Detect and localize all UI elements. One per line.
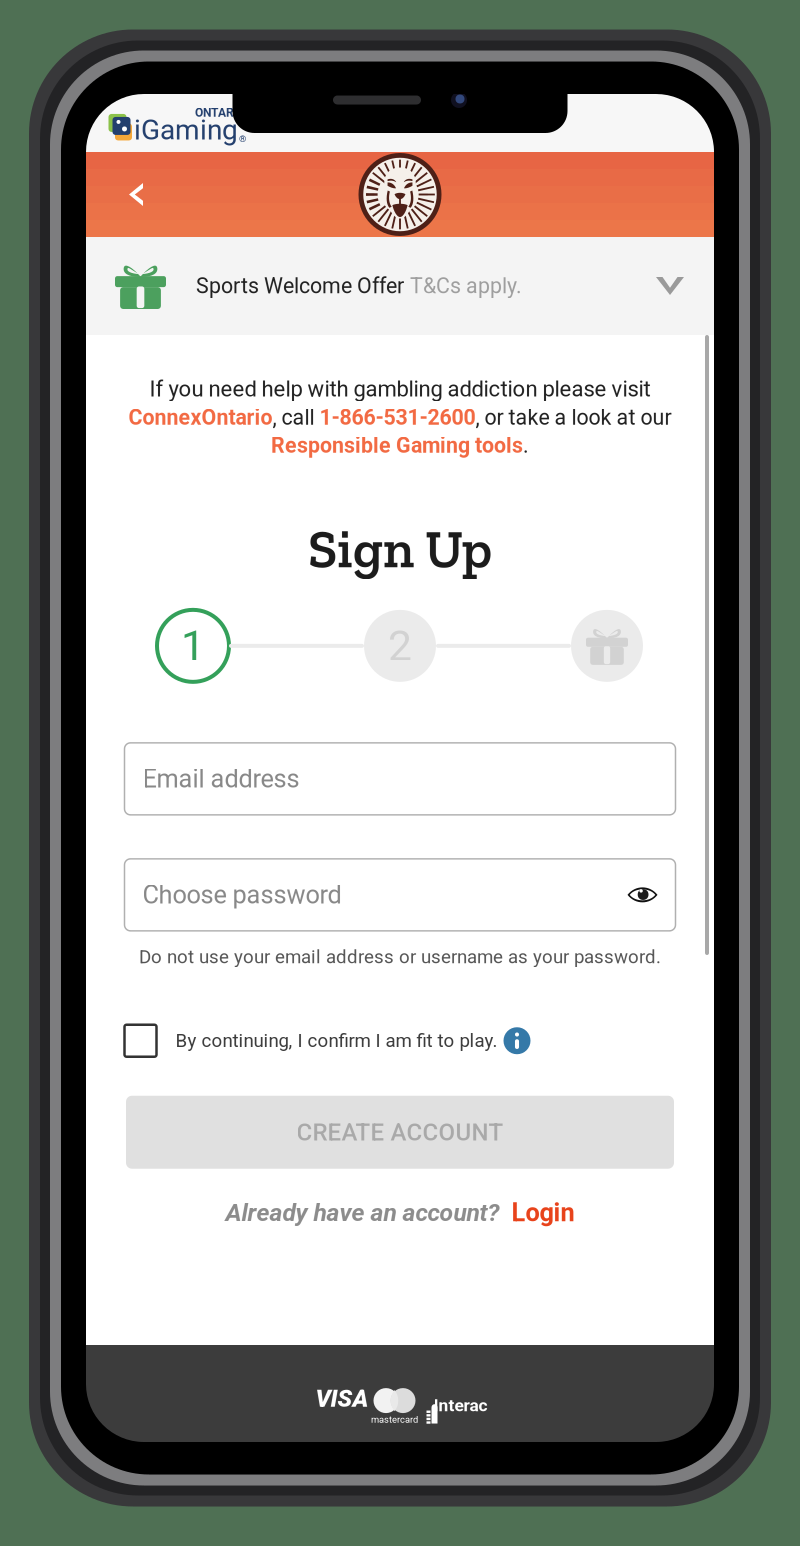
staticText: . — [523, 433, 529, 458]
button[interactable]: Choose password — [124, 859, 675, 931]
staticText: 1-866-531-2600 — [319, 405, 475, 430]
staticText: , call — [272, 405, 319, 430]
staticText: VISA — [315, 1384, 368, 1412]
staticText: If you need help with gambling addiction… — [149, 376, 650, 402]
button[interactable]: Login — [511, 1198, 574, 1227]
staticText: By continuing, I confirm I am fit to pla… — [175, 1030, 497, 1052]
staticText: Login — [511, 1198, 574, 1227]
staticText: Already have an account? — [225, 1198, 499, 1227]
staticText: ONTARIO — [195, 106, 246, 120]
button[interactable]: More information — [497, 1027, 530, 1054]
staticText: ® — [239, 133, 246, 144]
staticText: Sign Up — [308, 517, 492, 581]
staticText: Choose password — [142, 880, 341, 910]
staticText: T&Cs apply. — [410, 273, 522, 298]
staticText: Responsible Gaming tools — [271, 433, 523, 458]
staticText: iGaming — [134, 114, 238, 146]
staticText: Email address — [142, 764, 299, 794]
staticText: , or take a look at our — [475, 405, 671, 430]
staticText: mastercard — [371, 1414, 418, 1425]
staticText: CREATE ACCOUNT — [296, 1118, 503, 1146]
staticText: 1 — [181, 621, 205, 671]
button[interactable]: Back — [86, 152, 186, 237]
button[interactable]: CREATE ACCOUNT — [126, 1096, 674, 1169]
staticText: Do not use your email address or usernam… — [139, 946, 661, 968]
staticText: ConnexOntario — [128, 405, 272, 430]
button[interactable]: Confirm I am fit to play — [124, 1025, 156, 1057]
button[interactable]: Email address — [124, 743, 675, 815]
staticText: Sports Welcome Offer — [196, 273, 404, 298]
staticText: 2 — [388, 621, 412, 671]
button[interactable]: Sports Welcome Offer — [86, 237, 714, 335]
staticText: Interac — [433, 1395, 487, 1416]
